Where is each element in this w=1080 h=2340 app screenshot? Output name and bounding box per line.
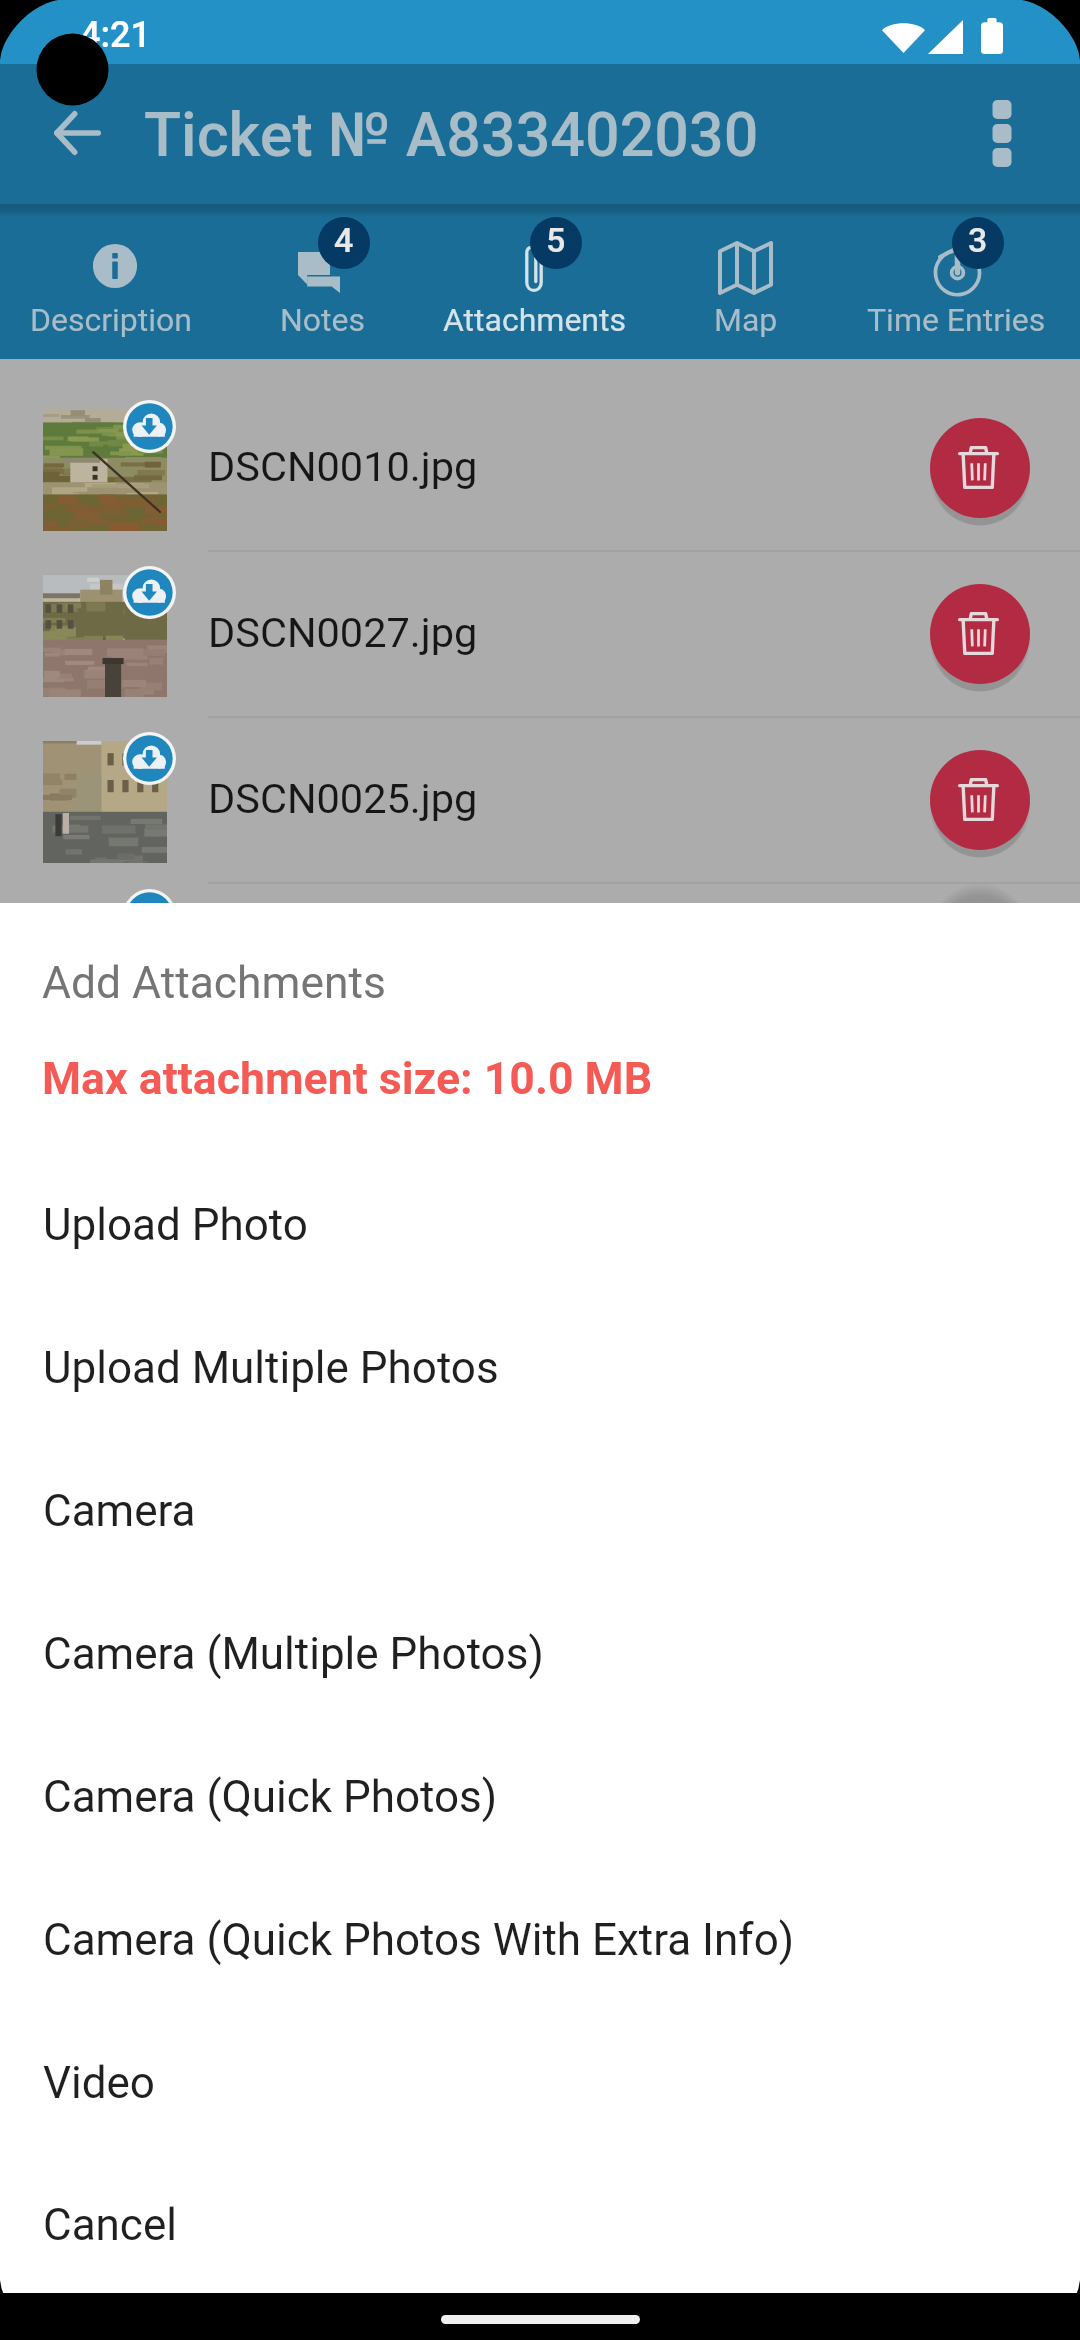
staticText: DSCN0010.jpg <box>208 442 478 491</box>
staticText: Upload Photo <box>43 1199 308 1251</box>
button[interactable]: Delete attachment <box>930 750 1030 850</box>
button[interactable]: 5 <box>429 201 640 359</box>
button[interactable]: Delete attachment <box>930 584 1030 684</box>
button[interactable]: Map <box>640 201 851 359</box>
staticText: Ticket № A833402030 <box>144 99 759 170</box>
staticText: Map <box>714 301 778 339</box>
staticText: Camera (Quick Photos With Extra Info) <box>43 1914 795 1966</box>
button[interactable]: More options <box>955 86 1049 180</box>
button[interactable]: DSCN0025.jpg <box>0 718 1080 882</box>
button[interactable]: Camera (Quick Photos With Extra Info) <box>0 1868 1080 2011</box>
button[interactable]: Camera (Quick Photos) <box>0 1725 1080 1868</box>
staticText: Camera (Quick Photos) <box>43 1771 498 1823</box>
staticText: Time Entries <box>867 301 1046 339</box>
button[interactable]: DSCN0027.jpg <box>0 552 1080 716</box>
button[interactable]: Upload Photo <box>0 1153 1080 1296</box>
staticText: Add Attachments <box>42 957 386 1009</box>
button[interactable]: 3 <box>851 201 1062 359</box>
staticText: Max attachment size: 10.0 MB <box>42 1053 653 1105</box>
staticText: Video <box>43 2057 155 2109</box>
staticText: Notes <box>280 301 366 339</box>
button[interactable]: Video <box>0 2011 1080 2154</box>
staticText: 3 <box>968 220 988 260</box>
staticText: Camera <box>43 1485 196 1537</box>
staticText: 5 <box>546 220 566 260</box>
button[interactable]: Camera <box>0 1439 1080 1582</box>
staticText: DSCN0025.jpg <box>208 774 478 823</box>
button[interactable]: Description <box>5 201 217 359</box>
staticText: Cancel <box>43 2199 177 2251</box>
staticText: Upload Multiple Photos <box>43 1342 499 1394</box>
button[interactable]: Upload Multiple Photos <box>0 1296 1080 1439</box>
staticText: 4 <box>334 220 354 260</box>
staticText: 4:21 <box>80 14 151 56</box>
staticText: DSCN0031.jpg <box>208 940 478 975</box>
staticText: Camera (Multiple Photos) <box>43 1628 544 1680</box>
button[interactable]: 4 <box>217 201 429 359</box>
button[interactable]: Navigate up <box>30 86 124 180</box>
button[interactable]: DSCN0031.jpg <box>0 884 1080 919</box>
staticText: Description <box>30 301 192 339</box>
staticText: DSCN0027.jpg <box>208 608 478 657</box>
button[interactable]: Camera (Multiple Photos) <box>0 1582 1080 1725</box>
button[interactable]: DSCN0010.jpg <box>0 386 1080 550</box>
button[interactable]: Cancel <box>0 2153 1080 2296</box>
button[interactable]: Delete attachment <box>930 418 1030 518</box>
staticText: Attachments <box>443 301 627 339</box>
